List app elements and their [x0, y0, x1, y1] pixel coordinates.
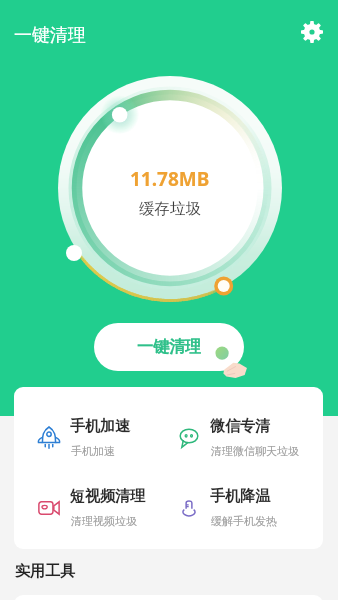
- staticText: 清理微信聊天垃圾: [211, 444, 299, 458]
- staticText: 微信专清: [210, 417, 270, 436]
- staticText: 缓解手机发热: [211, 514, 277, 528]
- staticText: 短视频清理: [70, 487, 145, 506]
- staticText: 手机加速: [70, 417, 130, 436]
- button[interactable]: 一键清理: [94, 323, 244, 371]
- button[interactable]: Settings: [292, 12, 332, 52]
- staticText: 清理视频垃圾: [71, 514, 137, 528]
- button[interactable]: 微信专清: [154, 393, 304, 461]
- staticText: 一键清理: [137, 337, 201, 357]
- staticText: 手机加速: [71, 444, 115, 458]
- staticText: 11.78MB: [130, 166, 210, 192]
- staticText: 实用工具: [15, 562, 75, 581]
- staticText: 一键清理: [14, 24, 86, 47]
- staticText: 缓存垃圾: [139, 199, 201, 219]
- staticText: 手机降温: [210, 487, 270, 506]
- button[interactable]: 短视频清理: [14, 463, 164, 531]
- button[interactable]: 手机降温: [154, 463, 304, 531]
- button[interactable]: 手机加速: [14, 393, 164, 461]
